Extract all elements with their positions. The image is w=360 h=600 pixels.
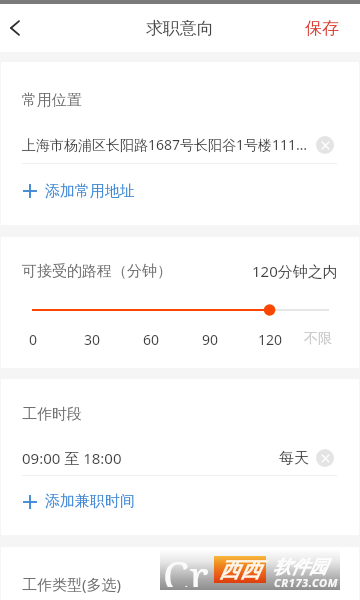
staticText: 90 <box>202 330 219 349</box>
staticText: 软件园 <box>273 556 327 579</box>
button[interactable]: Clear <box>316 449 334 467</box>
staticText: CR173.COM <box>274 575 338 590</box>
staticText: 可接受的路程（分钟） <box>22 262 172 281</box>
button[interactable]: Clear <box>316 136 334 154</box>
staticText: 不限 <box>304 330 332 348</box>
button[interactable]: Back <box>0 6 30 50</box>
staticText: 工作类型(多选) <box>22 574 122 594</box>
staticText: 工作时段 <box>22 405 82 424</box>
button[interactable] <box>1 295 359 325</box>
staticText: Cr <box>163 547 209 587</box>
staticText: 上海市杨浦区长阳路1687号长阳谷1号楼111… <box>22 135 310 154</box>
staticText: 西西 <box>219 557 261 583</box>
button[interactable]: 添加常用地址 <box>1 164 359 225</box>
staticText: 求职意向 <box>146 18 214 39</box>
staticText: 0 <box>29 330 38 349</box>
staticText: 常用位置 <box>22 91 82 110</box>
button[interactable]: 添加兼职时间 <box>1 476 359 535</box>
staticText: 30 <box>84 330 101 349</box>
button[interactable]: 保存 <box>291 10 360 47</box>
staticText: 添加兼职时间 <box>45 492 135 511</box>
button[interactable]: 09:00 至 18:00 <box>1 441 359 475</box>
button[interactable]: 求职意向 <box>146 18 214 39</box>
staticText: 每天 <box>279 449 309 468</box>
staticText: 保存 <box>305 18 339 39</box>
staticText: 60 <box>143 330 160 349</box>
button[interactable]: 上海市杨浦区长阳路1687号长阳谷1号楼111… <box>1 126 359 163</box>
staticText: 120 <box>258 330 283 349</box>
staticText: 120分钟之内 <box>252 261 338 281</box>
staticText: 添加常用地址 <box>45 182 135 201</box>
staticText: 09:00 至 18:00 <box>22 448 122 468</box>
